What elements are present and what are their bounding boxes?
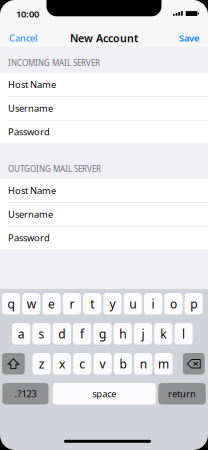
staticText: Cancel xyxy=(9,32,37,44)
button[interactable]: q xyxy=(2,293,20,314)
staticText: h xyxy=(119,326,126,342)
staticText: z xyxy=(39,356,45,372)
staticText: q xyxy=(7,296,14,312)
staticText: return xyxy=(168,388,196,400)
button[interactable]: n xyxy=(134,353,152,374)
staticText: INCOMING MAIL SERVER xyxy=(8,58,100,68)
button[interactable]: f xyxy=(73,323,91,344)
staticText: p xyxy=(190,296,197,312)
button[interactable]: j xyxy=(134,323,152,344)
staticText: x xyxy=(59,356,65,372)
button[interactable]: a xyxy=(12,323,30,344)
button[interactable]: l xyxy=(174,323,193,344)
button[interactable]: Host Name xyxy=(8,178,208,202)
staticText: 10:00 xyxy=(16,8,39,20)
button[interactable]: i xyxy=(144,293,162,314)
staticText: space xyxy=(92,388,116,400)
staticText: m xyxy=(158,356,169,372)
button[interactable]: Save xyxy=(175,29,199,47)
staticText: d xyxy=(58,326,65,342)
staticText: a xyxy=(18,326,25,342)
staticText: i xyxy=(152,296,155,312)
staticText: Host Name xyxy=(8,184,56,197)
staticText: Username xyxy=(8,102,53,114)
staticText: y xyxy=(109,296,115,312)
staticText: t xyxy=(90,296,94,312)
staticText: l xyxy=(182,326,185,342)
button[interactable]: c xyxy=(73,353,91,374)
staticText: s xyxy=(38,326,44,342)
button[interactable]: b xyxy=(114,353,132,374)
staticText: e xyxy=(48,296,55,312)
staticText: Password xyxy=(8,232,50,244)
button[interactable]: e xyxy=(42,293,61,314)
button[interactable]: z xyxy=(33,353,51,374)
button[interactable]: k xyxy=(154,323,172,344)
staticText: New Account xyxy=(70,31,138,45)
staticText: c xyxy=(79,356,85,372)
button[interactable]: m xyxy=(154,353,173,374)
button[interactable]: p xyxy=(185,293,203,314)
button[interactable]: Host Name xyxy=(8,72,208,96)
staticText: Password xyxy=(8,126,50,138)
staticText: k xyxy=(160,326,166,342)
staticText: .?123 xyxy=(14,388,36,400)
button[interactable]: v xyxy=(93,353,112,374)
staticText: Save xyxy=(179,32,199,44)
button[interactable]: h xyxy=(114,323,132,344)
button[interactable]: return xyxy=(158,383,206,404)
button[interactable]: g xyxy=(93,323,111,344)
button[interactable]: d xyxy=(53,323,71,344)
button[interactable]: r xyxy=(63,293,81,314)
staticText: f xyxy=(80,326,84,342)
staticText: v xyxy=(100,356,106,372)
button[interactable]: y xyxy=(103,293,122,314)
button[interactable]: o xyxy=(164,293,182,314)
button[interactable]: .?123 xyxy=(2,383,48,404)
staticText: Host Name xyxy=(8,78,56,91)
staticText: j xyxy=(141,326,144,342)
button[interactable]: Password xyxy=(8,226,208,250)
staticText: OUTGOING MAIL SERVER xyxy=(8,164,101,174)
staticText: b xyxy=(119,356,126,372)
button[interactable]: Shift xyxy=(2,353,25,374)
button[interactable]: Username xyxy=(8,96,208,120)
button[interactable]: Password xyxy=(8,120,208,144)
button[interactable]: s xyxy=(32,323,51,344)
button[interactable]: t xyxy=(83,293,101,314)
staticText: g xyxy=(99,326,106,342)
button[interactable]: u xyxy=(124,293,142,314)
staticText: Username xyxy=(8,208,53,220)
staticText: o xyxy=(170,296,177,312)
button[interactable]: w xyxy=(22,293,40,314)
button[interactable]: Username xyxy=(8,202,208,226)
button[interactable]: Cancel xyxy=(9,29,47,47)
button[interactable]: x xyxy=(53,353,71,374)
staticText: r xyxy=(69,296,74,312)
staticText: u xyxy=(129,296,136,312)
staticText: n xyxy=(140,356,147,372)
button[interactable]: Delete xyxy=(183,353,205,374)
button[interactable]: space xyxy=(53,383,156,404)
staticText: w xyxy=(27,296,36,312)
